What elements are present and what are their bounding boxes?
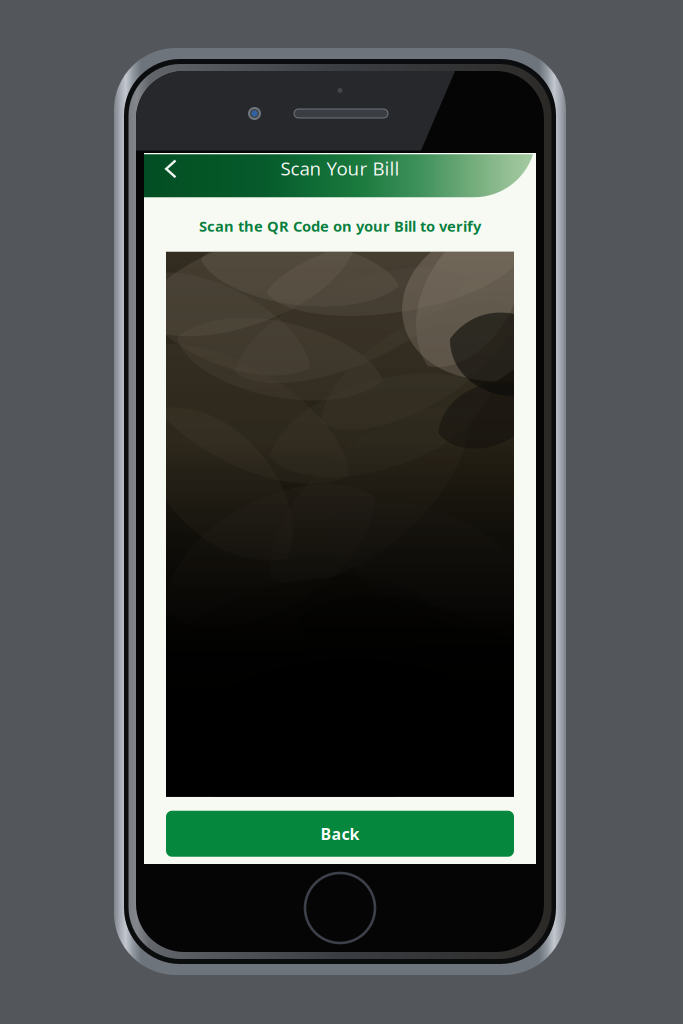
staticText: Scan the QR Code on your Bill to verify: [199, 216, 481, 236]
button[interactable]: Back: [166, 811, 514, 857]
button[interactable]: Back: [144, 154, 188, 197]
staticText: Scan Your Bill: [280, 156, 399, 181]
staticText: Back: [320, 823, 359, 844]
